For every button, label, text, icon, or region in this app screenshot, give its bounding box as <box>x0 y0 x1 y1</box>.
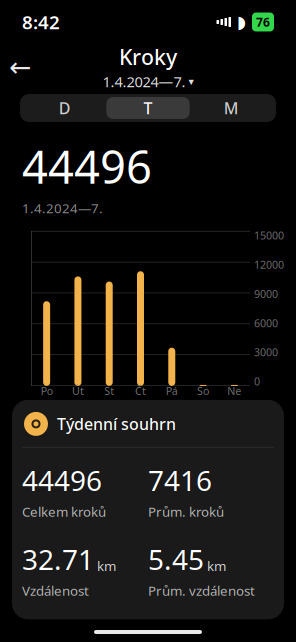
staticText: Kroky <box>119 43 177 71</box>
staticText: D <box>59 97 71 119</box>
staticText: ◗ <box>237 12 246 32</box>
staticText: Vzdálenost <box>22 582 89 599</box>
staticText: Pá <box>166 384 178 398</box>
staticText: St <box>104 384 114 398</box>
staticText: 0 <box>254 374 260 388</box>
staticText: 32.71 <box>22 540 94 578</box>
staticText: T <box>143 97 152 119</box>
staticText: 9000 <box>254 287 278 301</box>
button[interactable]: M <box>190 97 273 119</box>
staticText: 1.4.2024—7. <box>102 72 185 91</box>
staticText: 1.4.2024—7. <box>22 199 103 217</box>
staticText: M <box>224 97 239 119</box>
staticText: Prům. vzdálenost <box>148 582 255 599</box>
staticText: So <box>197 384 209 398</box>
staticText: km <box>207 557 226 575</box>
staticText: 44496 <box>22 136 152 196</box>
staticText: ▾ <box>188 76 193 88</box>
staticText: 76 <box>256 14 270 30</box>
staticText: 8:42 <box>22 10 60 34</box>
staticText: Út <box>72 384 84 398</box>
staticText: Po <box>41 384 53 398</box>
staticText: 15000 <box>254 228 284 242</box>
staticText: 7416 <box>148 462 212 499</box>
staticText: Týdenní souhrn <box>57 413 176 434</box>
staticText: 6000 <box>254 316 278 330</box>
staticText: km <box>97 557 116 575</box>
staticText: Prům. kroků <box>148 503 224 520</box>
staticText: 3000 <box>254 345 278 359</box>
staticText: Čt <box>135 384 146 398</box>
staticText: 5.45 <box>148 540 204 578</box>
staticText: ← <box>9 52 31 82</box>
staticText: 12000 <box>254 257 284 272</box>
button[interactable]: T <box>106 97 190 119</box>
staticText: Ne <box>227 384 241 398</box>
button[interactable]: Back <box>0 47 40 87</box>
button[interactable]: D <box>23 97 106 119</box>
staticText: Celkem kroků <box>22 503 106 520</box>
staticText: 44496 <box>22 462 102 499</box>
